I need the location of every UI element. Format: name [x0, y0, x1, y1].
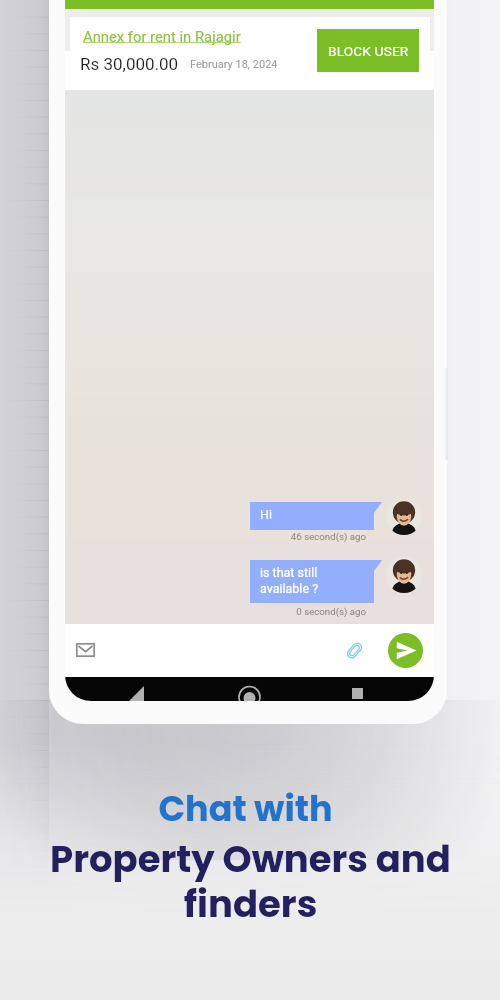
button[interactable]: Annex for rent in Rajagir: [70, 17, 430, 87]
staticText: Property Owners and finders: [50, 833, 451, 930]
staticText: Annex for rent in Rajagir: [83, 28, 241, 45]
staticText: Chat with: [158, 784, 333, 833]
staticText: 46 second(s) ago: [215, 531, 366, 542]
staticText: 0 second(s) ago: [215, 606, 366, 617]
button[interactable]: Message: [76, 643, 95, 657]
button[interactable]: Attach file: [344, 640, 365, 661]
staticText: BLOCK USER: [328, 43, 409, 59]
staticText: Rs 30,000.00: [80, 54, 179, 74]
button[interactable]: BLOCK USER: [317, 29, 419, 72]
button[interactable]: Send message: [388, 633, 423, 668]
staticText: February 18, 2024: [190, 58, 278, 71]
staticText: Hi: [260, 507, 272, 522]
staticText: is that still available ?: [260, 565, 319, 596]
